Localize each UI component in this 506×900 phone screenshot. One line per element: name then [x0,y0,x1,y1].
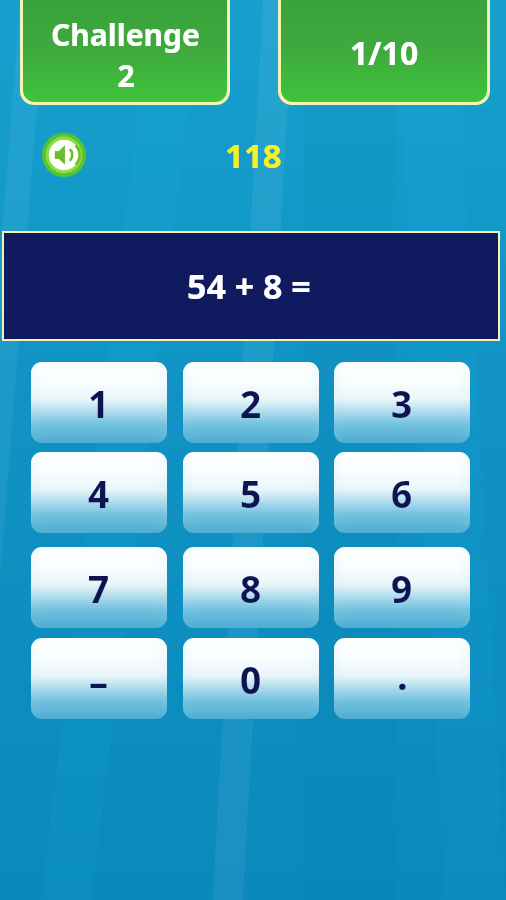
staticText: 2 [117,55,135,96]
button[interactable]: 7 [31,547,167,628]
staticText: 8 [240,563,262,613]
staticText: . [397,649,408,701]
button[interactable]: 1/10 [281,0,487,102]
button[interactable]: – [31,638,167,719]
staticText: 3 [391,378,413,428]
button[interactable]: Challenge [23,0,227,102]
staticText: 6 [391,468,413,518]
button[interactable]: 9 [334,547,470,628]
button[interactable]: 8 [183,547,319,628]
staticText: 1 [88,378,110,428]
staticText: 4 [88,468,110,518]
staticText: Challenge [51,14,200,55]
button[interactable]: . [334,638,470,719]
staticText: 5 [240,468,262,518]
staticText: 0 [240,654,262,704]
button[interactable]: 5 [183,452,319,533]
staticText: – [89,655,109,707]
button[interactable]: 3 [334,362,470,443]
staticText: 118 [225,133,282,178]
button[interactable]: 1 [31,362,167,443]
button[interactable]: 6 [334,452,470,533]
staticText: 7 [88,563,110,613]
staticText: 54 + 8 = [187,263,311,309]
button[interactable]: Sound on [41,132,87,178]
button[interactable]: 4 [31,452,167,533]
staticText: 1/10 [350,31,419,75]
button[interactable]: 2 [183,362,319,443]
staticText: 2 [240,378,262,428]
staticText: 9 [391,563,413,613]
button[interactable]: 0 [183,638,319,719]
